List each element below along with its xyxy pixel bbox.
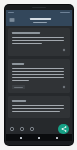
button[interactable] (8, 96, 70, 118)
button[interactable]: Share (58, 124, 69, 134)
button[interactable]: Home (36, 135, 42, 141)
button[interactable]: Search (19, 126, 25, 132)
button[interactable]: More options (62, 85, 66, 89)
button[interactable]: Recents (54, 135, 60, 141)
button[interactable]: Bookmark (9, 126, 15, 132)
button[interactable]: More options (8, 28, 70, 56)
button[interactable]: Menu (9, 17, 15, 23)
button[interactable]: Back (18, 135, 24, 141)
button[interactable]: More options (8, 59, 70, 93)
button[interactable]: Notes (29, 126, 35, 132)
button[interactable]: More options (62, 48, 66, 52)
button[interactable] (12, 85, 25, 89)
